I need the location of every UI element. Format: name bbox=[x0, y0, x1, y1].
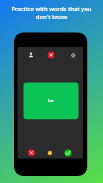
button[interactable]: Car bbox=[24, 82, 79, 119]
button[interactable]: Settings bbox=[69, 51, 78, 60]
button[interactable]: I know this word bbox=[64, 149, 72, 157]
staticText: Practice with words that you don't know bbox=[4, 5, 99, 20]
button[interactable]: I don't know this word bbox=[28, 149, 35, 156]
button[interactable]: Close bbox=[47, 51, 55, 59]
button[interactable]: Profile bbox=[26, 51, 35, 60]
staticText: Car bbox=[48, 98, 54, 103]
button[interactable]: Star this word bbox=[47, 150, 53, 156]
